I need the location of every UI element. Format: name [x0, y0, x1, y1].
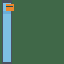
- button[interactable]: [6, 4, 14, 11]
